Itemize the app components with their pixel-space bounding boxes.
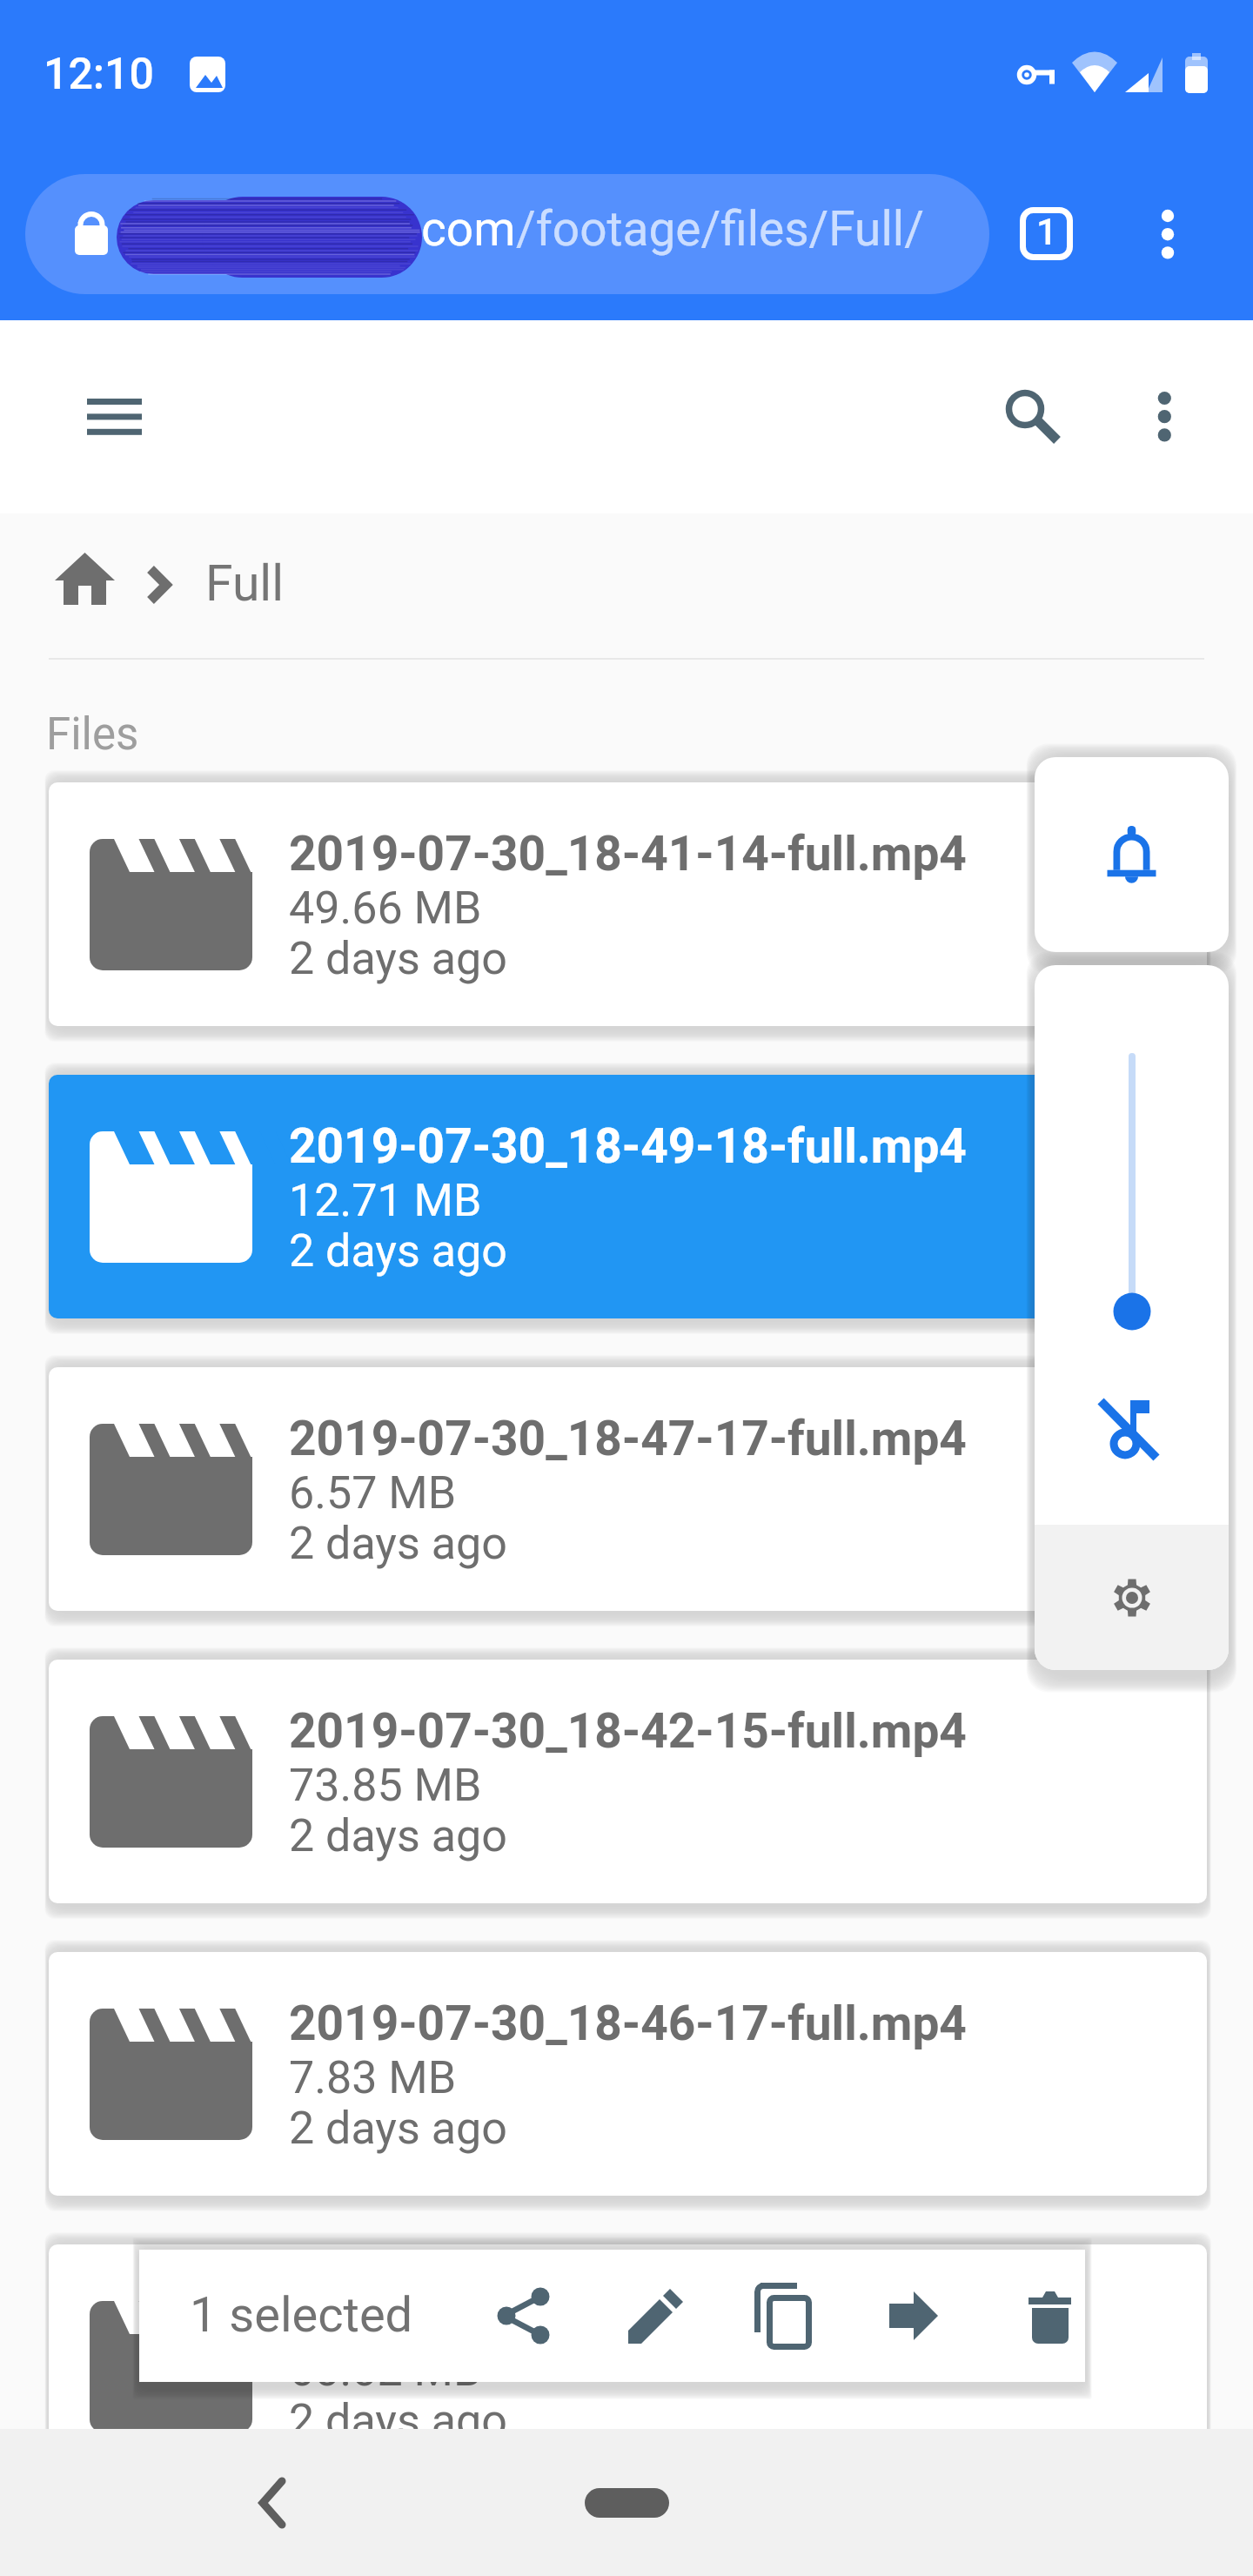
- staticText: 2019-07-30_18-52-11-full.mp4: [289, 2288, 1072, 2344]
- staticText: 49.66 MB: [289, 882, 482, 935]
- button[interactable]: Home: [585, 2488, 669, 2518]
- staticText: 2 days ago: [289, 932, 507, 985]
- staticText: 2 days ago: [289, 2394, 507, 2447]
- staticText: Files: [46, 708, 139, 761]
- button[interactable]: Menu: [62, 346, 166, 451]
- staticText: 2019-07-30_18-49-18-full.mp4: [289, 1118, 1072, 1174]
- button[interactable]: Search: [973, 346, 1077, 451]
- staticText: 12.71 MB: [289, 1174, 482, 1227]
- staticText: 2 days ago: [289, 1517, 507, 1570]
- staticText: com: [421, 201, 516, 257]
- button[interactable]: Address bar: [25, 174, 989, 294]
- button[interactable]: Tabs: [1020, 207, 1073, 260]
- staticText: 73.85 MB: [289, 1759, 482, 1812]
- button[interactable]: 2019-07-30_18-42-15-full.mp4: [49, 1660, 1207, 1903]
- button[interactable]: 2019-07-30_18-47-17-full.mp4: [49, 1367, 1207, 1611]
- staticText: 2019-07-30_18-47-17-full.mp4: [289, 1411, 1072, 1466]
- staticText: 7.83 MB: [289, 2051, 457, 2104]
- staticText: 6.57 MB: [289, 1466, 457, 1519]
- button[interactable]: Mute: [1062, 1359, 1201, 1499]
- staticText: 2 days ago: [289, 1224, 507, 1278]
- button[interactable]: Back: [220, 2451, 325, 2555]
- button[interactable]: Sound settings: [1035, 1525, 1229, 1670]
- staticText: /footage/files/Full/: [516, 201, 924, 257]
- staticText: 2 days ago: [289, 2102, 507, 2155]
- button[interactable]: 2019-07-30_18-49-18-full.mp4: [49, 1075, 1207, 1318]
- button[interactable]: Delete: [999, 2265, 1100, 2366]
- staticText: 2019-07-30_18-41-14-full.mp4: [289, 826, 1072, 882]
- button[interactable]: Rename: [605, 2265, 706, 2366]
- button[interactable]: Share: [472, 2265, 573, 2366]
- staticText: 60.02 MB: [289, 2344, 482, 2397]
- button[interactable]: 2019-07-30_18-41-14-full.mp4: [49, 782, 1207, 1026]
- staticText: 12:10: [44, 49, 154, 100]
- staticText: 1: [1036, 211, 1057, 253]
- button[interactable]: Copy: [733, 2265, 834, 2366]
- button[interactable]: Move: [863, 2265, 964, 2366]
- button[interactable]: Ringer mode: [1035, 757, 1229, 952]
- button[interactable]: More options: [1112, 346, 1216, 451]
- button[interactable]: Browser menu: [1116, 182, 1220, 286]
- staticText: 2019-07-30_18-42-15-full.mp4: [289, 1703, 1072, 1759]
- staticText: 2 days ago: [289, 1809, 507, 1862]
- staticText: 1 selected: [190, 2286, 413, 2344]
- button[interactable]: 2019-07-30_18-52-11-full.mp4: [49, 2244, 1207, 2488]
- button[interactable]: Breadcrumb Full: [35, 533, 339, 625]
- staticText: Full: [205, 554, 285, 613]
- button[interactable]: 2019-07-30_18-46-17-full.mp4: [49, 1952, 1207, 2196]
- staticText: 2019-07-30_18-46-17-full.mp4: [289, 1996, 1072, 2051]
